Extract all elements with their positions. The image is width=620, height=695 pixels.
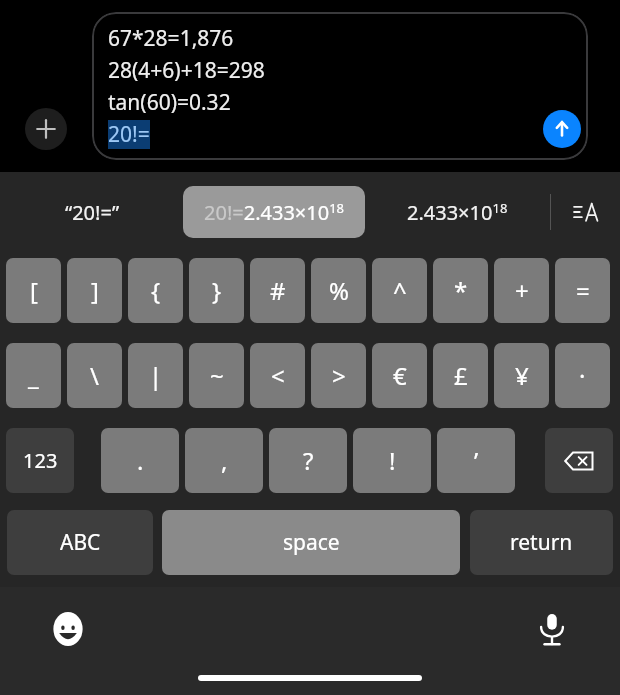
button[interactable]: Add attachment — [25, 108, 67, 150]
staticText: ¥ — [515, 359, 529, 392]
button[interactable]: > — [311, 343, 366, 408]
staticText: + — [515, 274, 529, 307]
staticText: < — [271, 359, 285, 392]
button[interactable]: “20!=” — [24, 186, 160, 238]
button[interactable]: 2.433×1018 — [380, 186, 534, 238]
button[interactable]: ? — [269, 428, 347, 493]
staticText: \ — [90, 359, 99, 392]
staticText: € — [393, 359, 407, 392]
button[interactable]: · — [555, 343, 610, 408]
staticText: 20!= — [108, 120, 150, 149]
staticText: return — [510, 528, 573, 557]
button[interactable]: return — [470, 510, 613, 575]
staticText: = — [576, 274, 590, 307]
button[interactable]: Send — [543, 110, 581, 148]
staticText: ABC — [60, 528, 101, 557]
staticText: · — [579, 359, 586, 392]
button[interactable]: | — [128, 343, 183, 408]
button[interactable]: = — [555, 258, 610, 323]
button[interactable]: ] — [67, 258, 122, 323]
staticText: space — [283, 528, 340, 557]
button[interactable]: < — [250, 343, 305, 408]
staticText: . — [137, 444, 144, 477]
button[interactable]: { — [128, 258, 183, 323]
staticText: > — [332, 359, 346, 392]
button[interactable]: ^ — [372, 258, 427, 323]
staticText: ^ — [393, 274, 407, 307]
staticText: ’ — [474, 444, 479, 477]
button[interactable]: ! — [353, 428, 431, 493]
staticText: ! — [389, 444, 396, 477]
staticText: } — [212, 274, 222, 307]
staticText: 67*28=1,876 — [108, 24, 234, 53]
button[interactable]: ’ — [437, 428, 515, 493]
button[interactable]: £ — [433, 343, 488, 408]
button[interactable]: \ — [67, 343, 122, 408]
button[interactable]: ABC — [7, 510, 153, 575]
staticText: tan(60)=0.32 — [108, 88, 231, 117]
button[interactable]: Emoji — [40, 601, 96, 657]
button[interactable]: Backspace — [545, 428, 613, 493]
staticText: [ — [30, 274, 38, 307]
staticText: { — [151, 274, 161, 307]
staticText: 123 — [23, 447, 58, 474]
button[interactable]: , — [185, 428, 263, 493]
button[interactable]: Voice input — [524, 601, 580, 657]
staticText: _ — [28, 359, 39, 392]
button[interactable]: _ — [6, 343, 61, 408]
staticText: 28(4+6)+18=298 — [108, 56, 265, 85]
button[interactable]: 67*28=1,876 — [92, 12, 588, 160]
button[interactable]: space — [162, 510, 460, 575]
staticText: | — [149, 359, 163, 392]
button[interactable]: + — [494, 258, 549, 323]
staticText: ] — [91, 274, 99, 307]
staticText: “20!=” — [65, 199, 120, 226]
staticText: ? — [303, 444, 314, 477]
staticText: ~ — [210, 359, 224, 392]
button[interactable]: } — [189, 258, 244, 323]
button[interactable]: * — [433, 258, 488, 323]
button[interactable]: Text formatting — [562, 188, 610, 236]
button[interactable]: 20!=2.433×1018 — [183, 186, 365, 238]
button[interactable]: . — [101, 428, 179, 493]
button[interactable]: € — [372, 343, 427, 408]
button[interactable]: 123 — [6, 428, 74, 493]
staticText: 20!=2.433×1018 — [204, 199, 345, 226]
staticText: , — [221, 444, 228, 477]
button[interactable]: % — [311, 258, 366, 323]
button[interactable]: # — [250, 258, 305, 323]
button[interactable]: ¥ — [494, 343, 549, 408]
button[interactable]: ~ — [189, 343, 244, 408]
staticText: # — [270, 274, 286, 307]
staticText: % — [329, 274, 349, 307]
button[interactable]: [ — [6, 258, 61, 323]
staticText: 2.433×1018 — [407, 199, 508, 226]
staticText: * — [454, 274, 468, 307]
staticText: £ — [454, 359, 468, 392]
